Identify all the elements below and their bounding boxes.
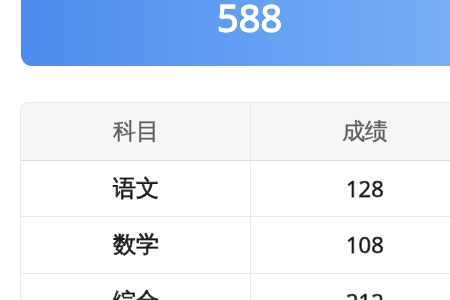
staticText: 科目 xyxy=(113,117,159,146)
staticText: 588 xyxy=(217,0,283,43)
staticText: 科目 xyxy=(113,117,159,146)
button[interactable]: 语文 xyxy=(21,160,250,217)
button[interactable]: 成绩 xyxy=(251,103,450,160)
staticText: 综合 xyxy=(113,287,159,300)
button[interactable]: 212 xyxy=(251,273,450,300)
staticText: 成绩 xyxy=(342,117,388,146)
staticText: 588 xyxy=(217,0,283,43)
staticText: 212 xyxy=(346,286,384,300)
staticText: 128 xyxy=(346,173,384,203)
button[interactable]: Total score 588 xyxy=(21,0,450,66)
staticText: 数学 xyxy=(113,230,159,259)
button[interactable]: 数学 xyxy=(21,216,250,273)
staticText: 语文 xyxy=(113,174,159,203)
staticText: 108 xyxy=(346,229,384,259)
staticText: 108 xyxy=(346,229,384,259)
staticText: 数学 xyxy=(113,230,159,259)
staticText: 212 xyxy=(346,286,384,300)
staticText: 128 xyxy=(346,173,384,203)
button[interactable]: 科目 xyxy=(21,103,250,160)
button[interactable]: 综合 xyxy=(21,273,250,300)
button[interactable]: 108 xyxy=(251,216,450,273)
staticText: 成绩 xyxy=(342,117,388,146)
staticText: 语文 xyxy=(113,174,159,203)
button[interactable]: 128 xyxy=(251,160,450,217)
staticText: 综合 xyxy=(113,287,159,300)
